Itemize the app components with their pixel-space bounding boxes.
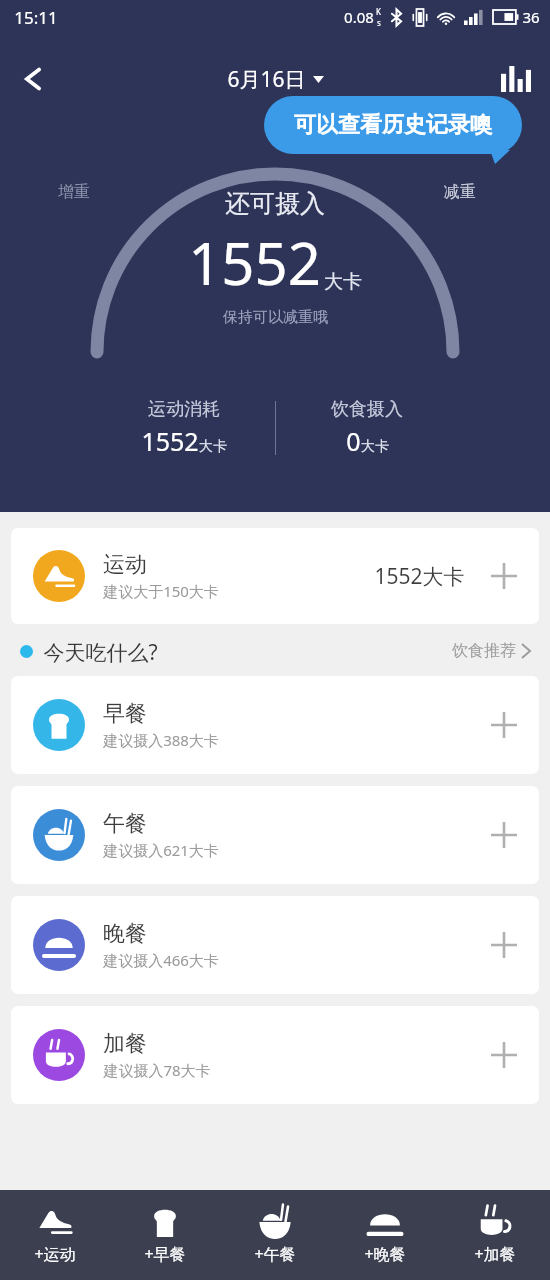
staticText: 15:11 (14, 6, 58, 29)
button[interactable]: 饮食推荐 (452, 641, 530, 661)
staticText: K (376, 6, 381, 17)
button[interactable]: History chart (490, 53, 542, 105)
staticText: +早餐 (144, 1243, 186, 1265)
staticText: 36 (522, 7, 540, 27)
button[interactable]: 饮食摄入 (292, 398, 442, 458)
button[interactable]: 早餐 (11, 676, 539, 774)
staticText: 运动消耗 (148, 398, 220, 421)
button[interactable]: 运动消耗 (109, 398, 259, 458)
staticText: +午餐 (254, 1243, 296, 1265)
button[interactable]: +运动 (0, 1190, 110, 1280)
staticText: +晚餐 (364, 1243, 406, 1265)
staticText: 大卡 (361, 438, 389, 456)
staticText: +运动 (34, 1243, 76, 1265)
staticText: 大卡 (199, 438, 227, 456)
button[interactable]: 午餐 (11, 786, 539, 884)
button[interactable]: 6月16日 (219, 61, 332, 98)
button[interactable]: Add 午餐 (487, 818, 521, 852)
staticText: 建议摄入78大卡 (103, 1060, 211, 1080)
staticText: 1552 (188, 223, 321, 302)
staticText: 加餐 (103, 1030, 147, 1058)
button[interactable]: Add 加餐 (487, 1038, 521, 1072)
staticText: 建议大于150大卡 (103, 581, 219, 601)
button[interactable]: +早餐 (110, 1190, 220, 1280)
staticText: 大卡 (324, 270, 362, 294)
staticText: 6月16日 (227, 65, 306, 94)
button[interactable]: +晚餐 (330, 1190, 440, 1280)
staticText: 0.08 (344, 7, 374, 27)
button[interactable]: 运动 (11, 528, 539, 624)
button[interactable]: Back (6, 52, 60, 106)
button[interactable]: 加餐 (11, 1006, 539, 1104)
staticText: 可以查看历史记录噢 (294, 111, 492, 139)
staticText: 减重 (444, 182, 476, 202)
staticText: 建议摄入388大卡 (103, 730, 219, 750)
staticText: s (377, 17, 381, 28)
button[interactable]: +加餐 (440, 1190, 550, 1280)
button[interactable]: 晚餐 (11, 896, 539, 994)
staticText: 1552 (141, 424, 199, 458)
staticText: 晚餐 (103, 920, 147, 948)
button[interactable]: 可以查看历史记录噢 (264, 96, 522, 154)
staticText: 饮食摄入 (331, 398, 403, 421)
staticText: 今天吃什么? (43, 638, 158, 664)
staticText: 运动 (103, 551, 147, 579)
staticText: 增重 (58, 182, 90, 202)
staticText: 1552大卡 (374, 562, 465, 591)
staticText: 保持可以减重哦 (223, 308, 328, 327)
button[interactable]: Add 早餐 (487, 708, 521, 742)
staticText: 建议摄入621大卡 (103, 840, 219, 860)
staticText: 建议摄入466大卡 (103, 950, 219, 970)
button[interactable]: Add 晚餐 (487, 928, 521, 962)
button[interactable]: +午餐 (220, 1190, 330, 1280)
staticText: 还可摄入 (225, 188, 325, 219)
staticText: 早餐 (103, 700, 147, 728)
button[interactable]: Add exercise (487, 559, 521, 593)
staticText: +加餐 (474, 1243, 516, 1265)
staticText: 饮食推荐 (452, 641, 516, 661)
staticText: 0 (346, 424, 361, 458)
staticText: 午餐 (103, 810, 147, 838)
